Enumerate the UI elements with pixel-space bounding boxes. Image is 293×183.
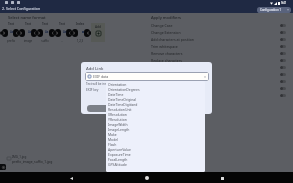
button[interactable]: Run (0, 164, 6, 170)
staticText: Aa (28, 30, 32, 34)
button[interactable]: Separator (62, 30, 67, 34)
button[interactable]: Model (108, 137, 205, 142)
staticText: prefix_image_suffix_1.jpg (12, 159, 53, 164)
staticText: Remove characters (151, 51, 280, 56)
staticText: DateTimeOriginal (108, 97, 137, 102)
button[interactable]: YResolution (108, 117, 205, 122)
staticText: Orientation (108, 82, 127, 87)
staticText: Make (108, 132, 117, 137)
staticText: ResolutionUnit (108, 107, 132, 112)
staticText: Insert date (151, 72, 280, 77)
staticText: Apply modifiers (151, 15, 182, 20)
button[interactable]: Separator (27, 30, 32, 34)
staticText: 9:41 (281, 1, 287, 5)
staticText: Aa (10, 30, 14, 34)
staticText: Custom script (151, 93, 280, 98)
button[interactable]: DateTimeDigitized (108, 102, 205, 107)
staticText: Change Case (151, 23, 280, 28)
button[interactable]: OrientationDegrees (108, 87, 205, 92)
staticText: Normalize (151, 86, 280, 91)
staticText: DateTime (108, 92, 124, 97)
staticText: Flash (108, 142, 117, 147)
button[interactable]: DateTime (108, 92, 205, 97)
staticText: Text will be inserted from (86, 82, 122, 86)
staticText: Index (71, 22, 89, 26)
button[interactable]: Reverse text (151, 78, 286, 85)
button[interactable]: ExposureTime (108, 152, 205, 157)
button[interactable]: Add characters at position (151, 36, 286, 43)
button[interactable]: Add counter (151, 64, 286, 71)
button[interactable] (87, 105, 117, 112)
staticText: image (19, 39, 37, 43)
button[interactable]: Orientation (108, 82, 205, 87)
staticText: YResolution (108, 117, 127, 122)
staticText: Model (108, 137, 118, 142)
button[interactable]: Change Extension (151, 29, 286, 36)
button[interactable]: GPSAltitude (108, 162, 205, 167)
button[interactable]: FocalLength (108, 157, 205, 162)
staticText: IMG_1.jpg (12, 155, 27, 159)
staticText: FocalLength (108, 157, 128, 162)
button[interactable]: Add (91, 23, 105, 42)
button[interactable]: Recents (217, 173, 227, 183)
staticText: Text (36, 22, 54, 26)
button[interactable]: ResolutionUnit (108, 107, 205, 112)
staticText: DateTimeDigitized (108, 102, 138, 107)
button[interactable] (66, 29, 78, 37)
staticText: ApertureValue (108, 147, 131, 152)
staticText: ExposureTime (108, 152, 131, 157)
staticText: Reverse text (151, 79, 280, 84)
button[interactable]: Flash (108, 142, 205, 147)
button[interactable]: ImageLength (108, 127, 205, 132)
button[interactable]: Separator (80, 30, 85, 34)
staticText: GPSAltitude (108, 162, 127, 167)
staticText: 2. Select Configuration (2, 6, 41, 11)
staticText: Trim whitespace (151, 44, 280, 49)
button[interactable]: Separator (44, 30, 49, 34)
button[interactable]: Remove characters (151, 50, 286, 57)
button[interactable]: Back (66, 173, 76, 183)
button[interactable] (31, 29, 43, 37)
staticText: ImageWidth (108, 122, 128, 127)
button[interactable]: EXIF data (85, 72, 209, 81)
button[interactable]: Trim whitespace (151, 43, 286, 50)
button[interactable] (84, 29, 90, 37)
staticText: Add Link (86, 66, 104, 72)
button[interactable]: Configuration 1 (257, 7, 291, 13)
button[interactable]: ImageWidth (108, 122, 205, 127)
button[interactable]: Home (142, 173, 152, 183)
staticText: Aa (45, 30, 49, 34)
staticText: Add counter (151, 65, 280, 70)
staticText: Text (19, 22, 37, 26)
button[interactable] (0, 29, 2, 37)
button[interactable]: Separator (9, 30, 14, 34)
staticText: Text (2, 22, 20, 26)
staticText: EXIF key (86, 88, 99, 92)
button[interactable] (13, 29, 25, 37)
button[interactable]: Insert date (151, 71, 286, 78)
button[interactable]: Change Case (151, 22, 286, 29)
staticText: OrientationDegrees (108, 87, 140, 92)
staticText: Text (53, 22, 71, 26)
staticText: suffix (36, 39, 54, 43)
button[interactable]: Normalize (151, 85, 286, 92)
staticText: Add characters at position (151, 37, 280, 42)
button[interactable]: Custom script (151, 92, 286, 99)
staticText: Configuration 1 (260, 8, 282, 12)
staticText: prefix (2, 39, 20, 43)
staticText: Aa (63, 30, 67, 34)
staticText: 1,2,3 (71, 39, 89, 43)
button[interactable]: XResolution (108, 112, 205, 117)
staticText: Add (95, 25, 102, 29)
staticText: XResolution (108, 112, 127, 117)
button[interactable]: ApertureValue (108, 147, 205, 152)
staticText: Change Extension (151, 30, 280, 35)
button[interactable]: Make (108, 132, 205, 137)
staticText: EXIF data (93, 74, 109, 79)
button[interactable] (49, 29, 61, 37)
button[interactable]: DateTimeOriginal (108, 97, 205, 102)
staticText: Select name format (8, 15, 46, 20)
button[interactable]: Replace characters (151, 57, 286, 64)
staticText: ImageLength (108, 127, 130, 132)
